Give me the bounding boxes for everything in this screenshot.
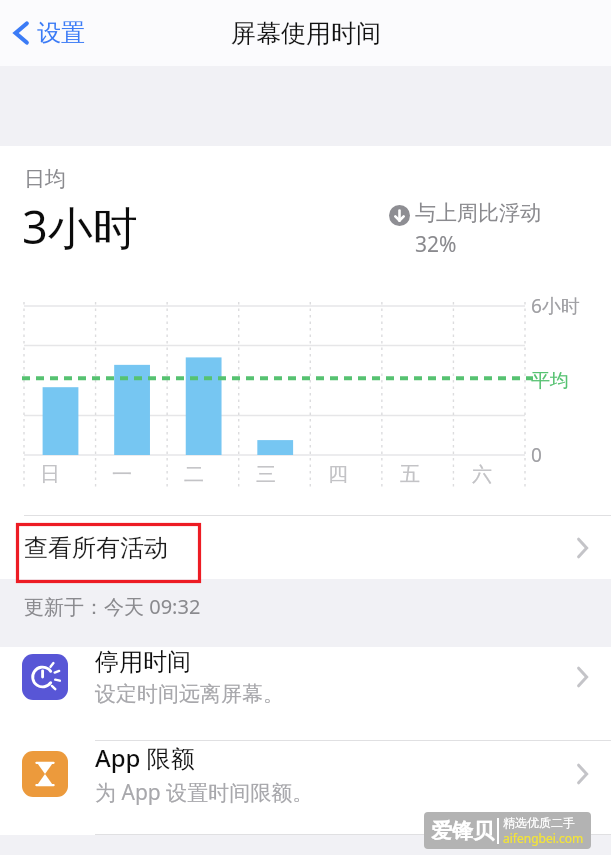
staticText: aifengbei.com [503,830,584,846]
button[interactable]: 设置 [8,14,93,52]
staticText: 四 [328,462,348,487]
staticText: 32% [415,230,457,259]
other: App limits [32,761,58,787]
staticText: 精选优质二手 [503,815,575,830]
staticText: 与上周比浮动 [415,200,541,226]
button[interactable]: App limits [0,741,611,835]
staticText: App 限额 [95,741,195,774]
staticText: 6小时 [531,293,580,319]
staticText: 屏幕使用时间 [231,18,381,49]
staticText: 更新于：今天 09:32 [24,593,201,620]
staticText: 三 [256,462,276,487]
staticText: 为 App 设置时间限额。 [95,778,314,807]
staticText: 一 [112,462,132,487]
staticText: 0 [531,442,542,468]
staticText: 爱锋贝 [431,818,494,844]
staticText: 二 [184,462,204,487]
staticText: 日均 [24,166,66,192]
staticText: 平均 [531,369,569,393]
other: Downtime [30,662,60,692]
staticText: 日 [40,462,60,487]
staticText: 设置 [37,18,85,48]
staticText: 六 [472,462,492,487]
staticText: 查看所有活动 [24,533,168,563]
button[interactable]: 查看所有活动 [0,516,611,579]
staticText: 设定时间远离屏幕。 [95,681,284,707]
staticText: 停用时间 [95,647,191,677]
button[interactable]: Downtime [0,647,611,741]
staticText: 五 [400,462,420,487]
staticText: 3小时 [22,196,138,257]
